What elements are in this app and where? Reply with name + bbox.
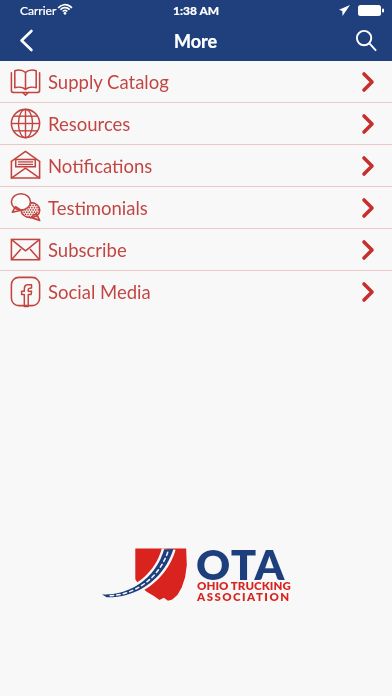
button[interactable]: Testimonials [0,187,392,228]
button[interactable]: Social Media [0,271,392,312]
staticText: Subscribe [48,239,127,261]
staticText: Testimonials [48,197,148,219]
button[interactable]: Supply Catalog [0,61,392,102]
button[interactable]: Search [340,20,392,61]
button[interactable]: Notifications [0,145,392,186]
button[interactable]: Resources [0,103,392,144]
button[interactable]: Subscribe [0,229,392,270]
staticText: Supply Catalog [48,71,169,93]
staticText: More [174,30,218,52]
staticText: Resources [48,113,131,135]
staticText: 1:38 AM [173,3,220,17]
staticText: OHIO TRUCKING [197,579,291,593]
staticText: Social Media [48,281,151,303]
button[interactable]: Back [0,20,52,61]
staticText: Carrier [20,3,57,17]
staticText: ASSOCIATION [197,590,291,604]
staticText: Notifications [48,155,153,177]
staticText: OTA [196,539,286,589]
